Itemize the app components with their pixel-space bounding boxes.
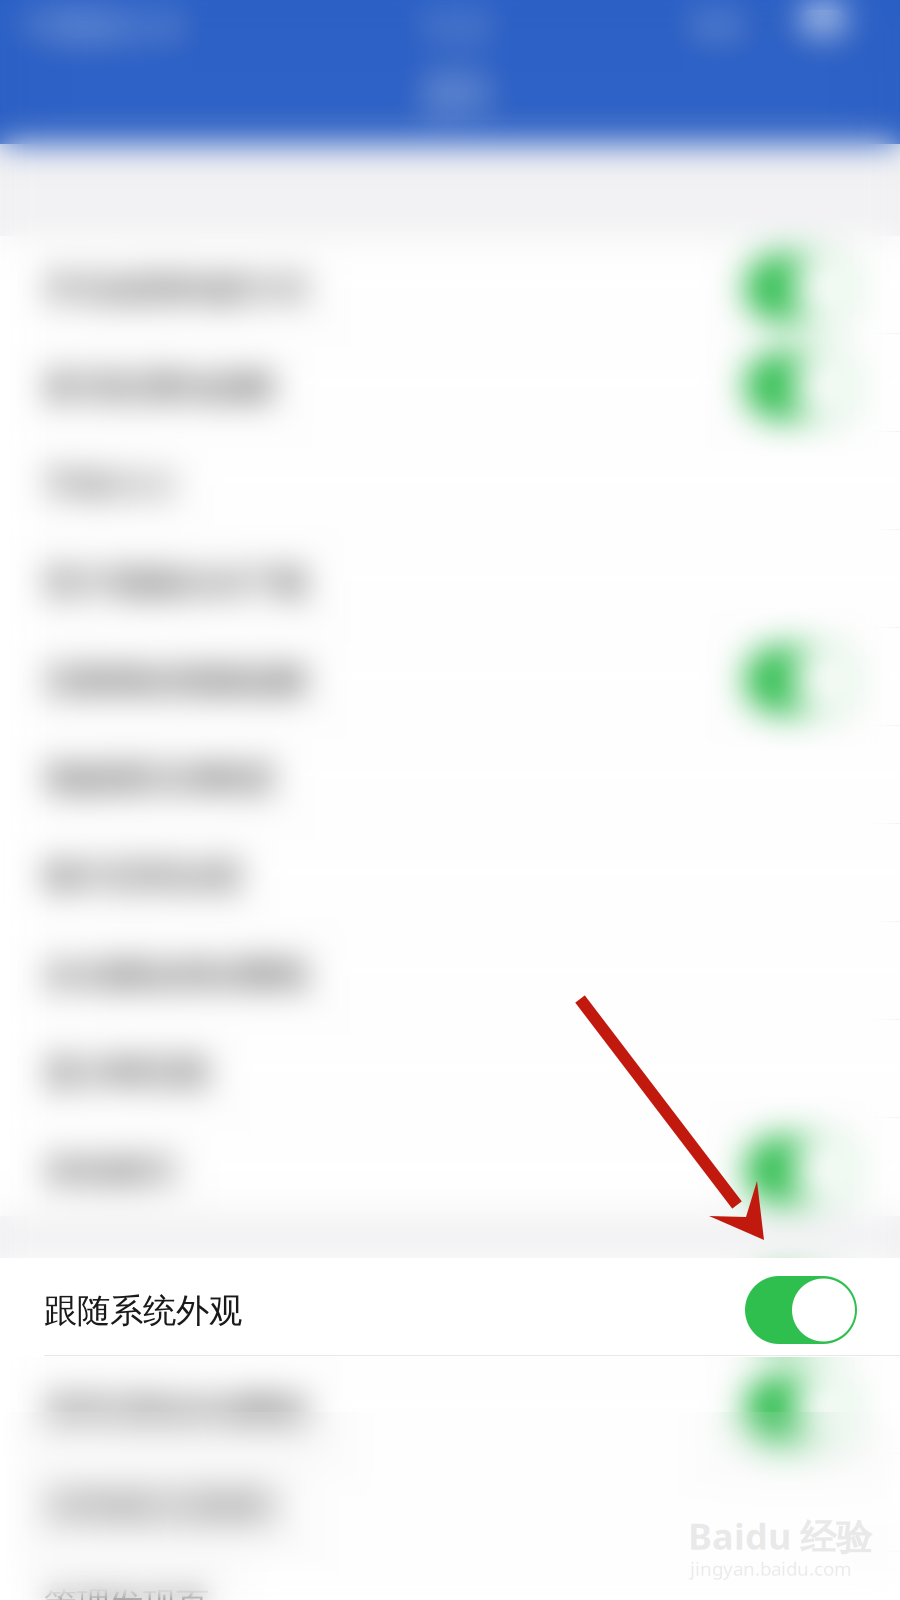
- staticText: 10:24: [416, 8, 492, 47]
- button[interactable]: 深色模式: [0, 1118, 900, 1216]
- button[interactable]: 流量播放视频提醒: [0, 628, 900, 726]
- staticText: 语音消息自动播放: [44, 1388, 308, 1429]
- staticText: 视频通话清晰度: [44, 758, 275, 799]
- staticText: 跟随系统外观: [44, 1290, 242, 1331]
- button[interactable]: 开启桌面快捷方式: [0, 236, 900, 334]
- staticText: 聊天背景设置: [44, 856, 242, 897]
- staticText: 新消息通知提醒: [44, 366, 275, 407]
- staticText: 管理发现页: [44, 1584, 209, 1600]
- staticText: 流量播放视频提醒: [44, 660, 308, 701]
- staticText: 通用: [420, 72, 492, 116]
- staticText: Baidu 经验: [688, 1512, 872, 1560]
- button[interactable]: 自动播放朋友圈视: [0, 922, 900, 1020]
- button[interactable]: 跟随系统外观: [0, 1258, 900, 1356]
- button[interactable]: 视频通话清晰度: [0, 726, 900, 824]
- button[interactable]: 照片视频自动下载: [0, 530, 900, 628]
- button[interactable]: 管理发现页: [0, 1552, 900, 1600]
- staticText: 照片视频自动下载: [44, 562, 308, 603]
- staticText: jingyan.baidu.com: [690, 1556, 851, 1581]
- staticText: 关怀模式无障碍: [44, 1486, 275, 1527]
- button[interactable]: 聊天背景设置: [0, 824, 900, 922]
- button[interactable]: 关怀模式无障碍: [0, 1454, 900, 1552]
- staticText: 字体大小: [44, 464, 176, 505]
- button[interactable]: 显示网页图: [0, 1020, 900, 1118]
- staticText: 94%: [688, 8, 746, 47]
- staticText: 显示网页图: [44, 1052, 209, 1093]
- button[interactable]: 新消息通知提醒: [0, 334, 900, 432]
- button[interactable]: 语音消息自动播放: [0, 1356, 900, 1454]
- button[interactable]: 字体大小: [0, 432, 900, 530]
- staticText: 深色模式: [44, 1150, 176, 1191]
- staticText: 开启桌面快捷方式: [44, 268, 308, 309]
- staticText: 中国移动 4G: [24, 8, 186, 47]
- staticText: 自动播放朋友圈视: [44, 954, 308, 995]
